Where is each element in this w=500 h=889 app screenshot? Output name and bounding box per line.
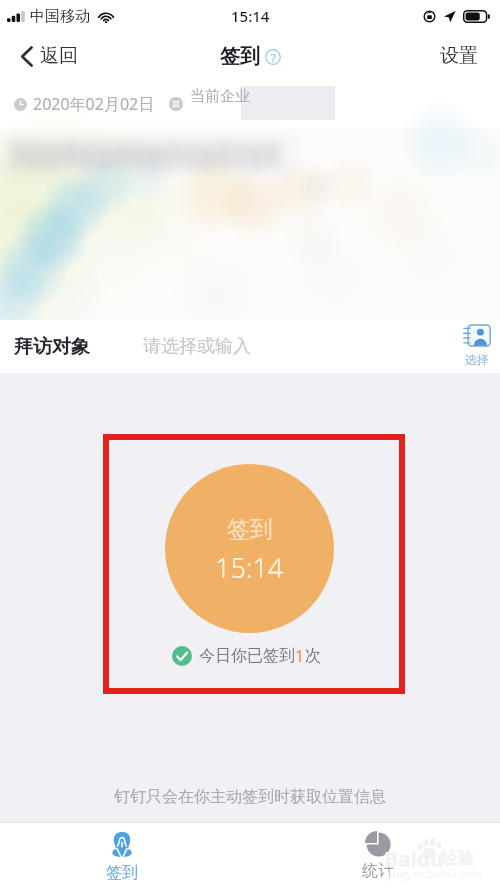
staticText: 钉钉只会在你主动签到时获取位置信息: [114, 787, 386, 807]
staticText: 中国移动: [30, 7, 90, 26]
staticText: Baidu: [384, 845, 444, 874]
staticText: 请选择或输入: [143, 335, 251, 358]
button[interactable]: 设置: [424, 32, 500, 80]
staticText: jingyan.baidu.com: [387, 866, 483, 881]
staticText: 经验: [440, 848, 474, 869]
staticText: 返回: [40, 44, 78, 68]
staticText: 15:14: [231, 6, 270, 26]
staticText: 签到: [227, 515, 273, 544]
button[interactable]: 签到: [0, 823, 250, 889]
button[interactable]: 签到: [165, 464, 334, 633]
staticText: 次: [305, 646, 321, 666]
staticText: 拜访对象: [14, 335, 90, 359]
staticText: 设置: [440, 44, 478, 68]
staticText: 当前企业: [190, 87, 250, 106]
button[interactable]: 返回: [0, 32, 90, 80]
staticText: 今日你已签到: [199, 646, 295, 666]
staticText: 2020年02月02日: [33, 93, 155, 115]
staticText: 15:14: [215, 549, 284, 586]
staticText: 统计: [362, 861, 394, 881]
button[interactable]: Help: [265, 49, 281, 65]
button[interactable]: 统计: [250, 823, 500, 889]
staticText: 选择: [465, 352, 489, 367]
button[interactable]: 选择: [462, 322, 492, 367]
staticText: 签到: [220, 44, 260, 69]
staticText: ?: [271, 50, 276, 65]
staticText: 签到: [106, 863, 138, 883]
staticText: 1: [295, 645, 305, 667]
